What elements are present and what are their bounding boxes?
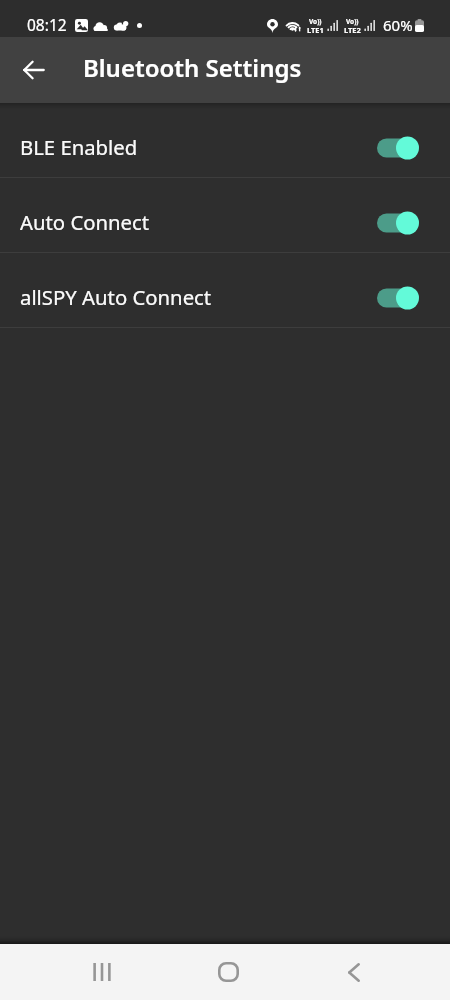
staticText: allSPY Auto Connect bbox=[20, 283, 212, 311]
staticText: 08:12 bbox=[27, 14, 67, 35]
button[interactable]: Toggle bbox=[377, 133, 423, 163]
staticText: Bluetooth Settings bbox=[83, 51, 302, 84]
button[interactable]: Back bbox=[12, 37, 56, 103]
button[interactable]: Back bbox=[298, 944, 410, 1000]
button[interactable]: Toggle bbox=[377, 283, 423, 313]
staticText: Vo)) bbox=[346, 17, 359, 26]
staticText: LTE1 bbox=[307, 25, 324, 35]
button[interactable]: BLE Enabled bbox=[0, 103, 450, 177]
staticText: Vo)) bbox=[309, 17, 322, 26]
button[interactable]: Recents bbox=[46, 944, 158, 1000]
staticText: LTE2 bbox=[344, 25, 361, 35]
staticText: BLE Enabled bbox=[20, 133, 138, 161]
button[interactable]: allSPY Auto Connect bbox=[0, 253, 450, 327]
button[interactable]: Home bbox=[172, 944, 284, 1000]
button[interactable]: Auto Connect bbox=[0, 178, 450, 252]
button[interactable]: Toggle bbox=[377, 208, 423, 238]
staticText: 60% bbox=[383, 15, 413, 35]
staticText: Auto Connect bbox=[20, 208, 150, 236]
